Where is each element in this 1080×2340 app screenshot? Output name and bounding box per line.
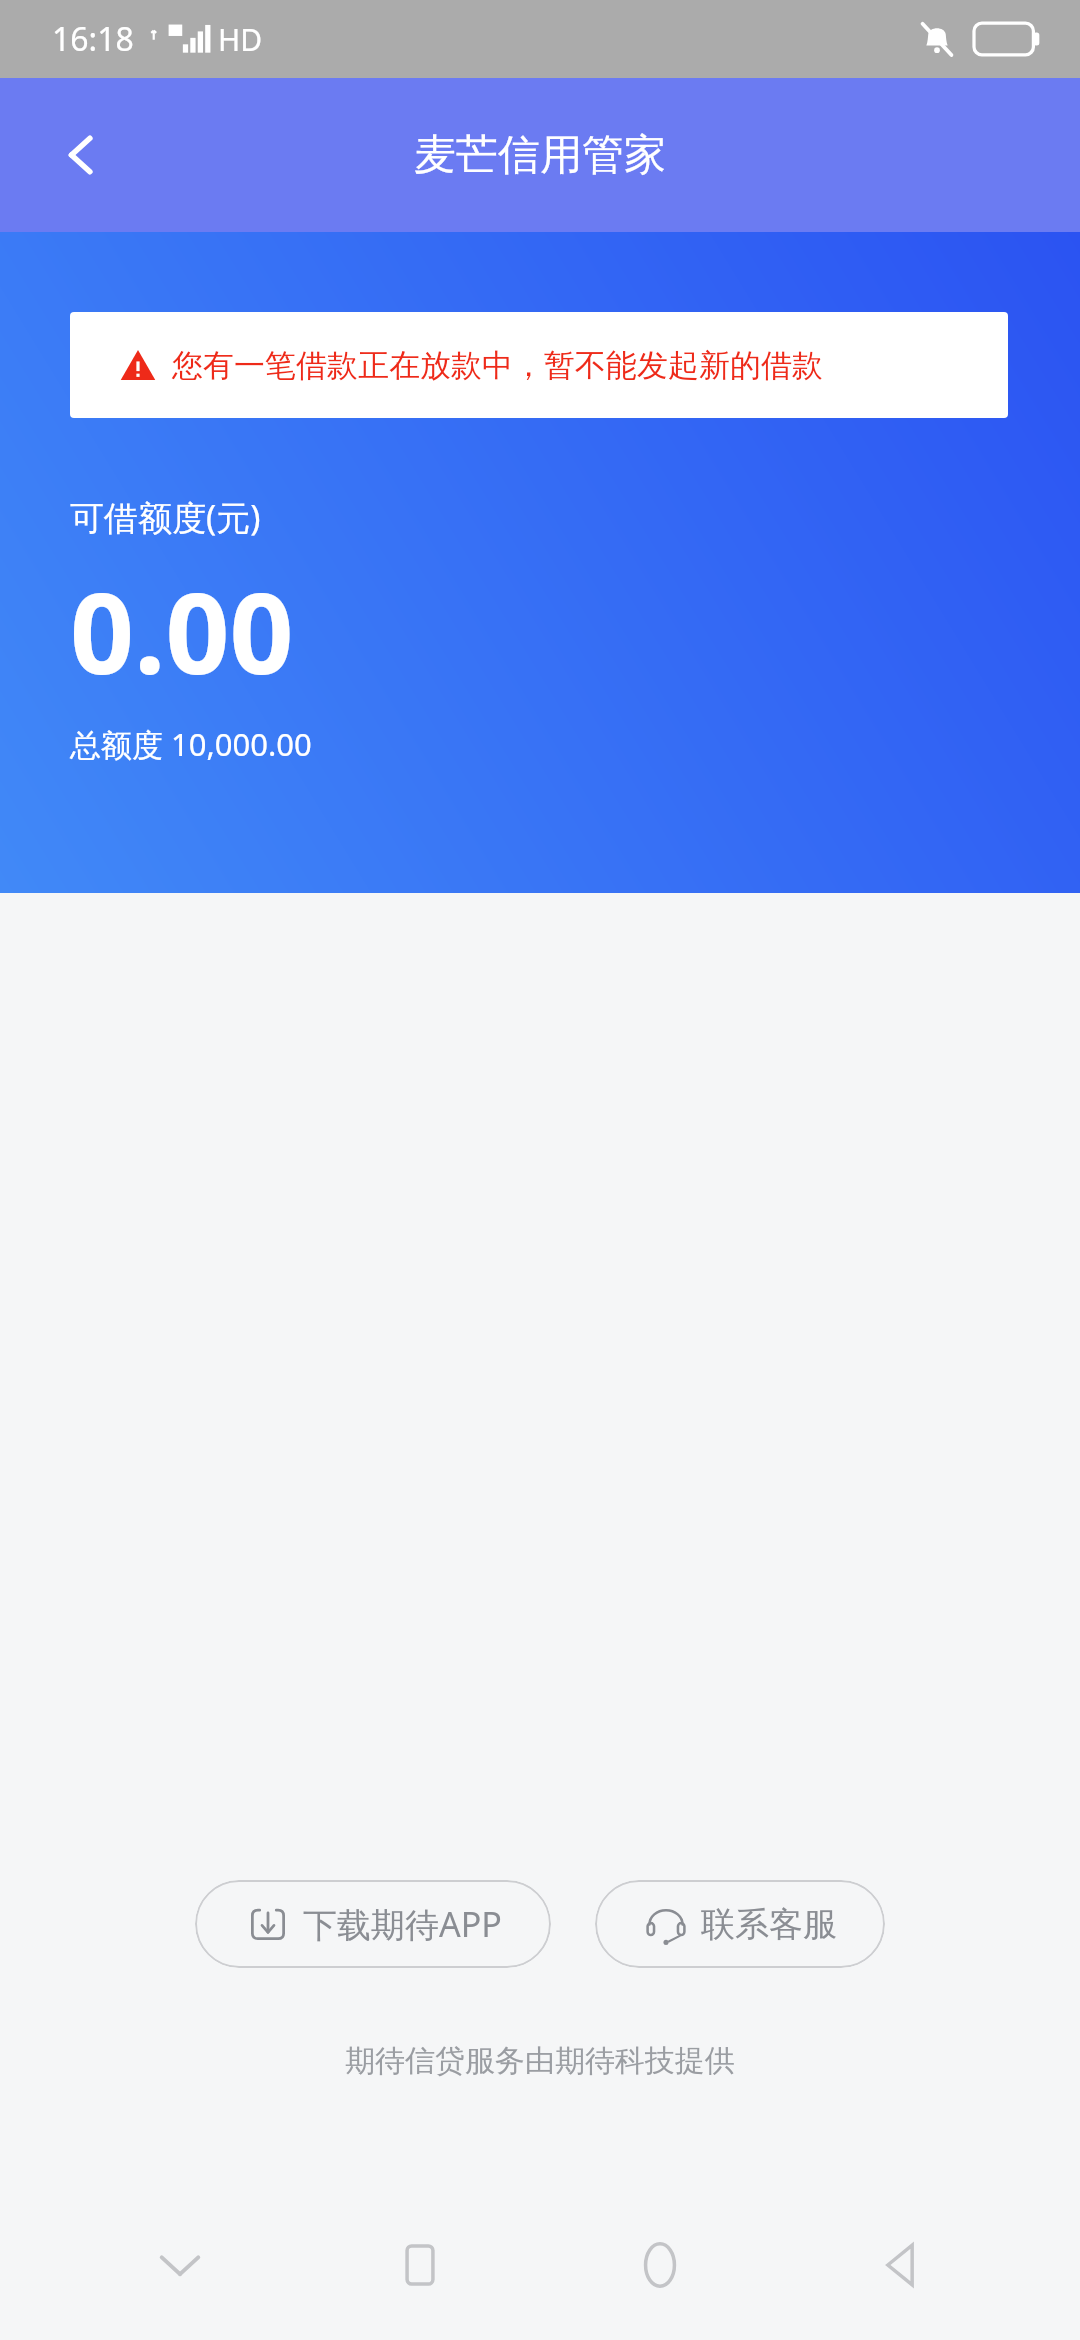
staticText: 您有一笔借款正在放款中，暂不能发起新的借款 [172, 346, 823, 385]
button[interactable]: 您有一笔借款正在放款中，暂不能发起新的借款 [70, 312, 1008, 418]
button[interactable]: 下载期待APP [195, 1880, 551, 1968]
staticText: 总额度 10,000.00 [70, 723, 312, 765]
staticText: 联系客服 [701, 1903, 837, 1946]
button[interactable]: Recent apps [360, 2205, 480, 2325]
staticText: HD [218, 19, 263, 60]
staticText: 期待信贷服务由期待科技提供 [345, 2042, 735, 2080]
button[interactable]: Back [840, 2205, 960, 2325]
button[interactable]: Home [600, 2205, 720, 2325]
staticText: 0.00 [70, 554, 294, 707]
button[interactable]: Hide keyboard [120, 2205, 240, 2325]
staticText: 麦芒信用管家 [414, 129, 666, 182]
button[interactable]: 联系客服 [595, 1880, 885, 1968]
staticText: 下载期待APP [303, 1901, 502, 1947]
staticText: 16:18 [52, 17, 134, 61]
button[interactable]: 返回 [34, 107, 130, 203]
staticText: 可借额度(元) [70, 494, 261, 540]
